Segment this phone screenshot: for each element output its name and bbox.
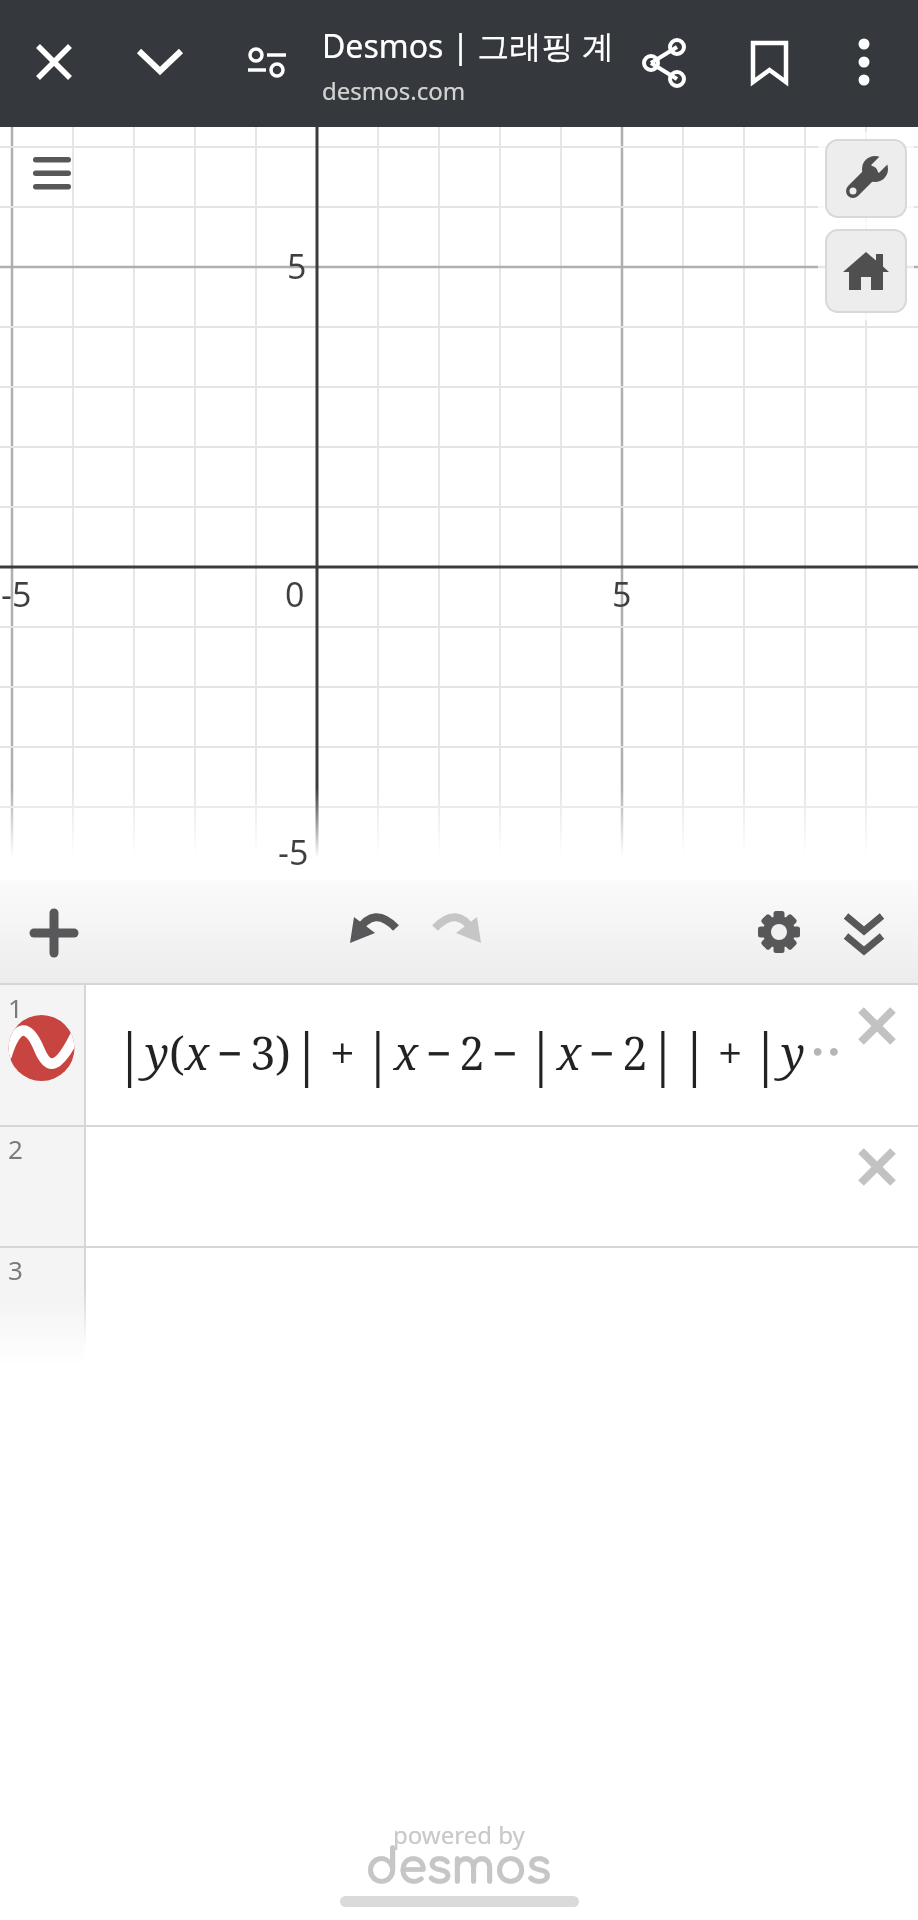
staticText: 3 — [8, 1252, 23, 1287]
staticText: |y(x − 3)| + |x − 2 − |x − 2|| + |y ∙∙ — [114, 1014, 859, 1090]
staticText: desmos — [366, 1842, 552, 1893]
staticText: -5 — [1, 571, 32, 617]
staticText: -5 — [278, 829, 309, 875]
button[interactable] — [20, 145, 84, 205]
button[interactable] — [832, 30, 896, 94]
button[interactable] — [852, 1000, 904, 1052]
staticText: 2 — [8, 1131, 23, 1166]
button[interactable] — [832, 901, 896, 963]
button[interactable] — [427, 901, 491, 961]
button[interactable] — [737, 30, 801, 94]
staticText: 0 — [285, 571, 305, 617]
button[interactable] — [10, 1016, 74, 1080]
button[interactable] — [747, 901, 811, 963]
staticText: powered by — [393, 1818, 525, 1851]
button[interactable] — [341, 901, 405, 961]
button[interactable] — [235, 30, 299, 94]
button[interactable] — [128, 30, 192, 94]
button[interactable] — [634, 30, 698, 94]
button[interactable] — [22, 901, 86, 965]
button[interactable] — [22, 30, 86, 94]
staticText: 5 — [287, 243, 307, 289]
button[interactable] — [826, 140, 906, 217]
staticText: desmos.com — [322, 74, 466, 107]
staticText: 5 — [612, 571, 632, 617]
staticText: 1 — [8, 990, 23, 1025]
button[interactable] — [852, 1141, 904, 1193]
staticText: Desmos | 그래핑 계... — [322, 24, 616, 68]
button[interactable] — [826, 230, 906, 312]
